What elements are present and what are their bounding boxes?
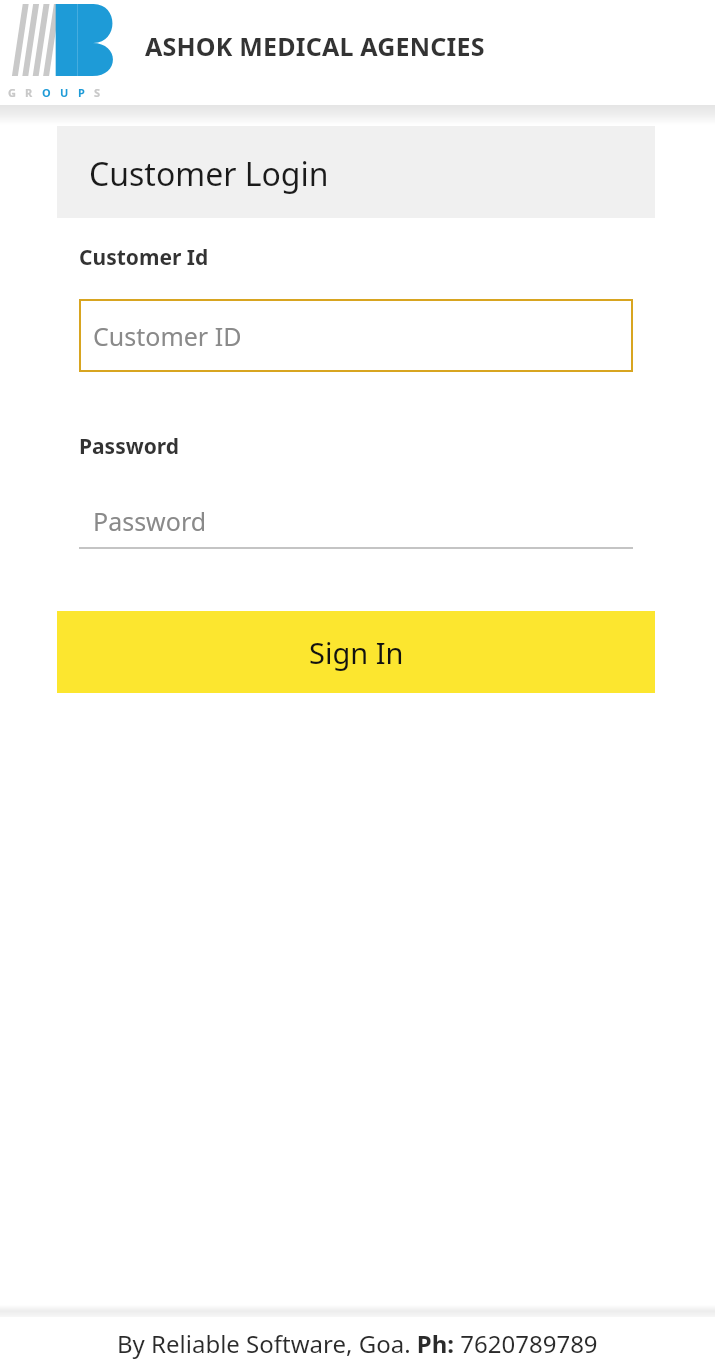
button[interactable]: Customer ID [79,299,633,372]
button[interactable]: Sign In [57,611,655,693]
staticText: Customer ID [93,319,242,353]
staticText: P [78,85,85,100]
staticText: R [25,85,33,100]
staticText: O [42,85,51,100]
staticText: Customer Id [79,243,209,272]
staticText: By Reliable Software, Goa. Ph: 762078978… [117,1327,598,1360]
staticText: Sign In [309,633,404,672]
staticText: U [60,85,69,100]
staticText: Customer Login [89,152,329,196]
staticText: Password [79,432,180,461]
staticText: ASHOK MEDICAL AGENCIES [145,29,485,63]
staticText: S [94,85,101,100]
button[interactable]: Password [79,495,633,549]
staticText: G [8,85,16,100]
staticText: Password [93,504,207,538]
